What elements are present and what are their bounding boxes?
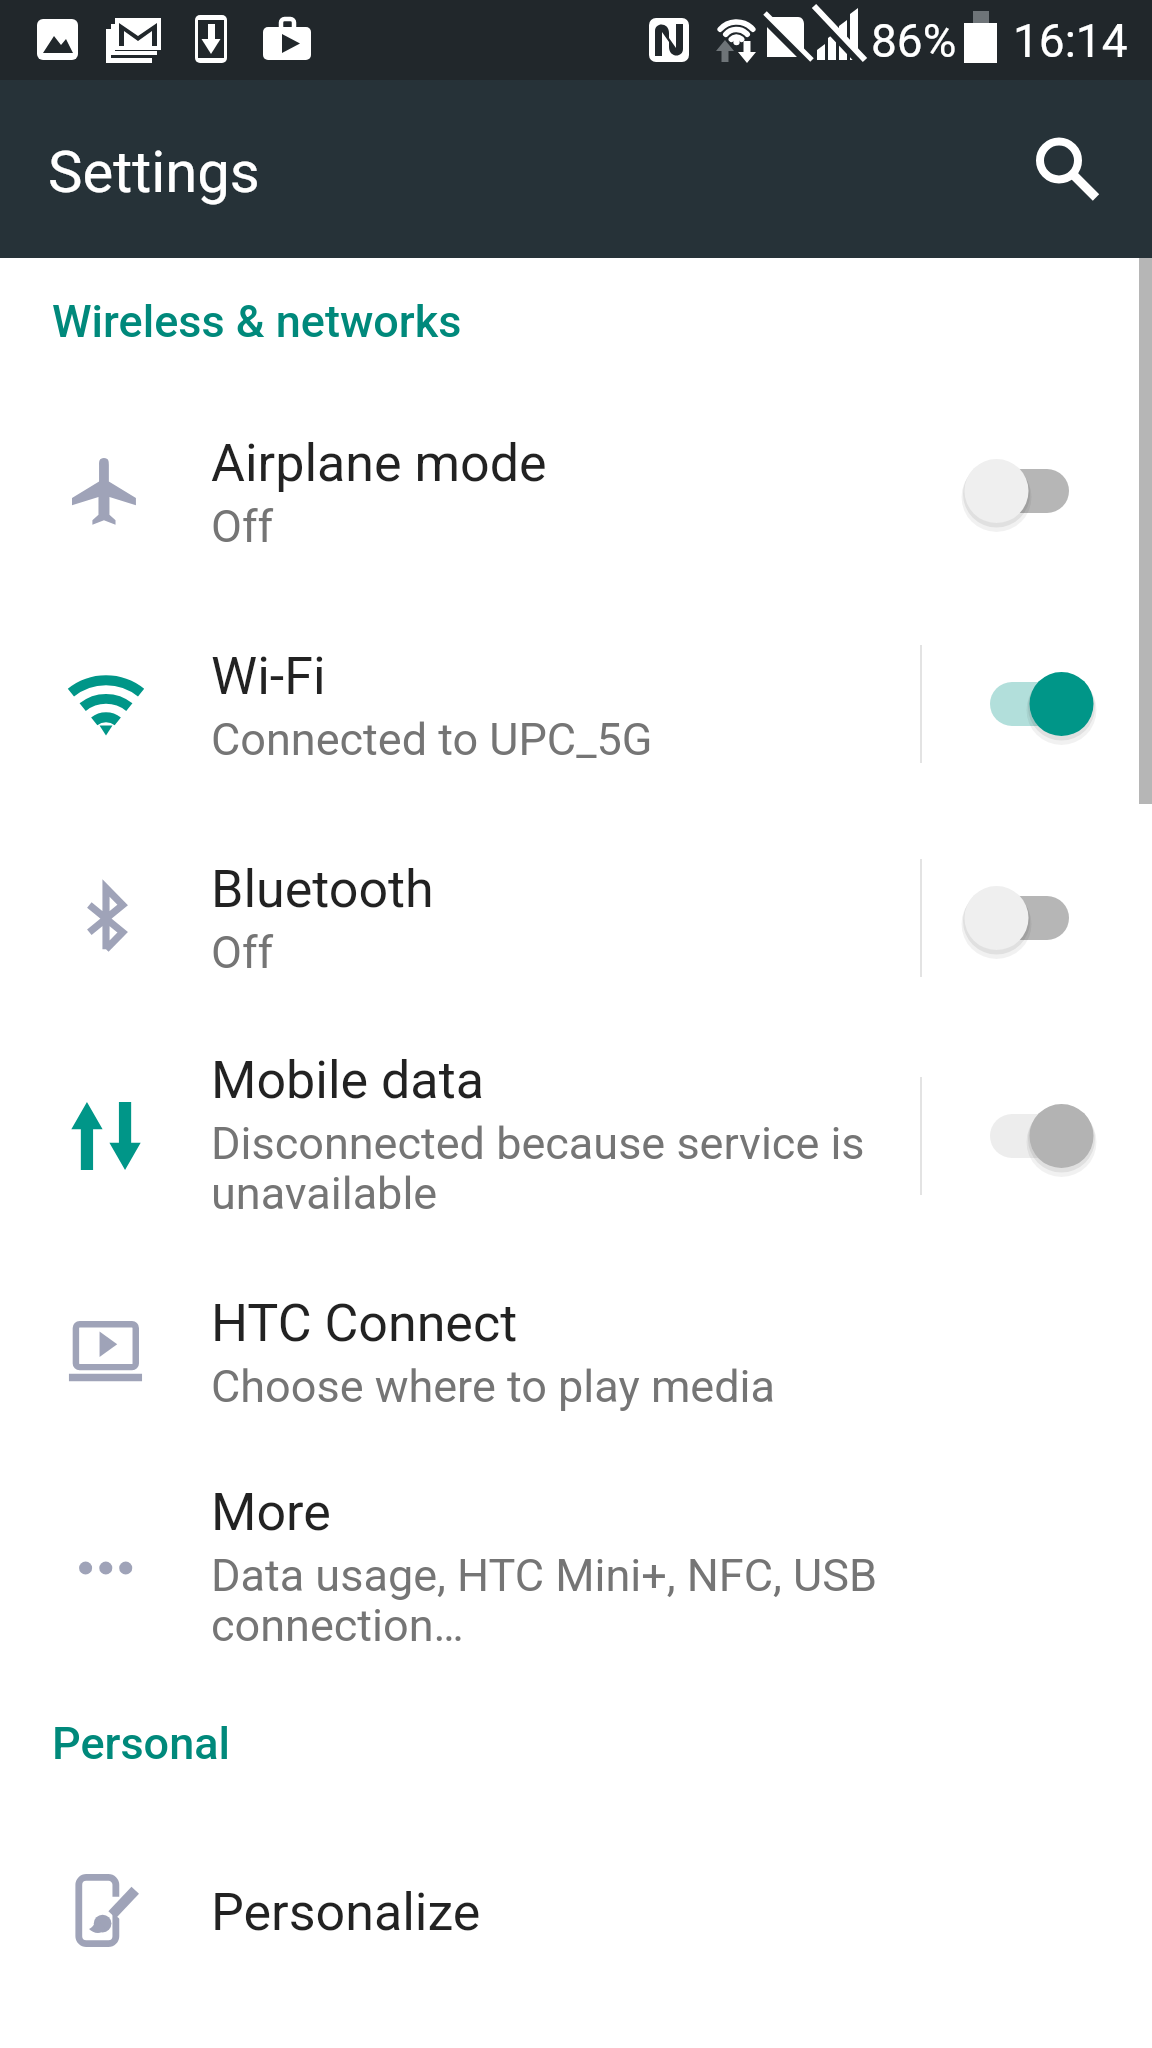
staticText: Personalize (211, 1882, 481, 1943)
button[interactable]: Personalize (0, 1830, 1152, 2020)
button[interactable]: Switch off (956, 446, 1104, 536)
button[interactable]: Switch off (956, 873, 1104, 963)
staticText: 86% (871, 14, 957, 68)
button[interactable]: Airplane mode (0, 365, 1152, 592)
staticText: Off (211, 926, 881, 979)
staticText: 16:14 (1013, 14, 1128, 68)
button[interactable]: Mobile data (0, 1000, 1152, 1245)
button[interactable]: Switch on (956, 659, 1104, 749)
staticText: More (211, 1482, 331, 1543)
staticText: Settings (48, 138, 260, 206)
button[interactable]: More (0, 1434, 1152, 1690)
staticText: Wireless & networks (52, 295, 462, 348)
staticText: Connected to UPC_5G (211, 713, 881, 766)
staticText: Personal (52, 1717, 230, 1770)
button[interactable]: HTC Connect (0, 1245, 1152, 1434)
staticText: Off (211, 500, 881, 553)
staticText: HTC Connect (211, 1293, 518, 1354)
button[interactable]: Switch on (956, 1091, 1104, 1181)
staticText: Wi-Fi (211, 646, 326, 707)
button[interactable]: Search (1004, 107, 1114, 217)
staticText: Data usage, HTC Mini+, NFC, USB connecti… (211, 1549, 881, 1652)
staticText: Mobile data (211, 1050, 484, 1111)
button[interactable]: Wi-Fi (0, 592, 1152, 806)
staticText: Choose where to play media (211, 1360, 881, 1413)
staticText: Bluetooth (211, 859, 434, 920)
button[interactable]: Bluetooth (0, 806, 1152, 1000)
staticText: Disconnected because service is unavaila… (211, 1117, 881, 1220)
staticText: Airplane mode (211, 433, 547, 494)
